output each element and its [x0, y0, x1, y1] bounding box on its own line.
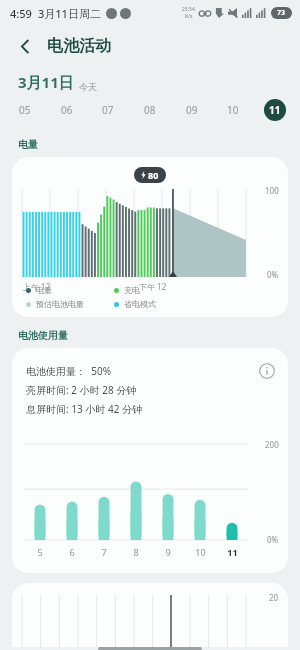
staticText: 7: [101, 546, 107, 558]
staticText: 充电: [124, 285, 140, 295]
staticText: K/s: [185, 13, 193, 20]
staticText: 200: [265, 439, 279, 450]
button[interactable]: 06: [56, 99, 78, 121]
button[interactable]: 80: [12, 157, 288, 317]
button[interactable]: Back: [10, 31, 40, 61]
staticText: 电量: [18, 138, 38, 151]
staticText: 今天: [79, 81, 97, 92]
button[interactable]: 09: [181, 99, 203, 121]
staticText: 3月11日: [18, 72, 74, 92]
button[interactable]: 07: [97, 99, 119, 121]
button[interactable]: 10: [222, 99, 244, 121]
staticText: 亮屏时间: 2 小时 28 分钟: [26, 383, 137, 397]
staticText: 3月11日周二: [38, 6, 101, 21]
staticText: 0%: [267, 269, 279, 280]
staticText: 06: [61, 103, 73, 117]
staticText: 息屏时间: 13 小时 42 分钟: [26, 402, 142, 416]
staticText: 05: [19, 103, 31, 117]
staticText: 80: [148, 169, 159, 181]
button[interactable]: 20: [12, 583, 288, 647]
button[interactable]: 08: [139, 99, 161, 121]
staticText: 6: [69, 546, 75, 558]
button[interactable]: 11: [264, 99, 286, 121]
staticText: 8: [133, 546, 139, 558]
staticText: 电量: [36, 285, 52, 295]
button[interactable]: Info: [256, 360, 278, 382]
staticText: 9: [165, 546, 171, 558]
staticText: 100: [265, 185, 279, 196]
staticText: 电池活动: [47, 36, 111, 56]
staticText: 电池使用量： 50%: [26, 364, 111, 378]
staticText: 5: [37, 546, 43, 558]
staticText: 下午 12: [139, 281, 167, 292]
staticText: 上午 12: [23, 281, 51, 292]
staticText: 07: [102, 103, 114, 117]
staticText: 4:59: [10, 6, 32, 21]
staticText: 73: [277, 8, 286, 18]
staticText: 09: [186, 103, 198, 117]
staticText: 10: [227, 103, 239, 117]
staticText: 11: [227, 546, 238, 558]
staticText: 0%: [267, 534, 279, 545]
staticText: 电池使用量: [18, 329, 68, 342]
button[interactable]: 05: [14, 99, 36, 121]
staticText: 10: [195, 546, 206, 558]
staticText: 11: [269, 103, 281, 117]
staticText: 23.54: [182, 6, 195, 13]
staticText: 08: [144, 103, 156, 117]
staticText: 省电模式: [124, 299, 156, 309]
staticText: 预估电池电量: [36, 299, 84, 309]
button[interactable]: 电池使用量： 50%: [12, 348, 288, 573]
staticText: 20: [269, 592, 279, 603]
